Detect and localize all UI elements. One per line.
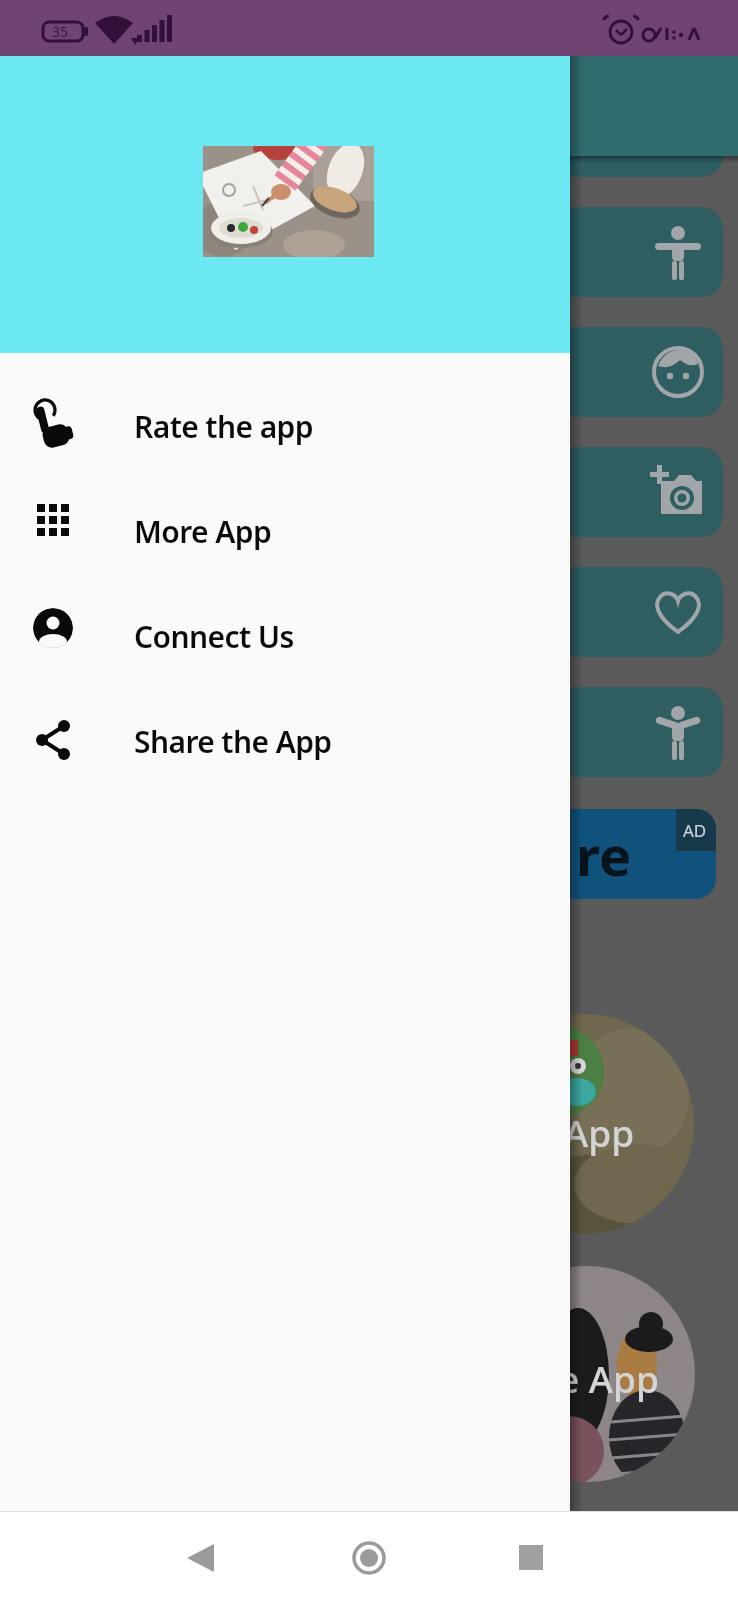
staticText: AD (683, 819, 707, 842)
button[interactable] (15, 447, 723, 537)
button[interactable]: Connect Us (0, 596, 570, 676)
button[interactable] (503, 1512, 557, 1600)
button[interactable] (15, 207, 723, 297)
staticText: Connect Us (134, 616, 294, 657)
button[interactable] (342, 1512, 396, 1600)
staticText: Rate the app (134, 406, 313, 447)
staticText: More App (134, 511, 272, 552)
staticText: 35 (52, 22, 69, 41)
button[interactable]: Share the App (0, 701, 570, 781)
button[interactable] (15, 567, 723, 657)
button[interactable] (15, 687, 723, 777)
button[interactable] (15, 87, 723, 177)
button[interactable]: re (22, 809, 716, 899)
staticText: Share the App (134, 721, 332, 762)
button[interactable] (15, 327, 723, 417)
staticText: App (564, 1107, 635, 1157)
button[interactable]: More App (0, 491, 570, 571)
staticText: e App (558, 1353, 659, 1403)
button[interactable]: Rate the app (0, 386, 570, 466)
staticText: re (576, 818, 632, 892)
button[interactable] (173, 1512, 227, 1600)
